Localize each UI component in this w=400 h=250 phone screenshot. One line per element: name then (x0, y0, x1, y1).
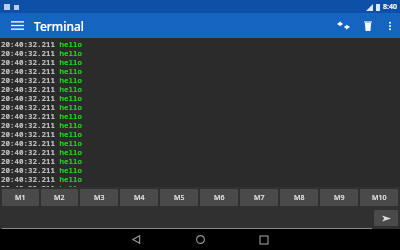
staticText: 20:40:32.211 hello (1, 129, 82, 138)
button[interactable] (0, 207, 374, 229)
button[interactable]: M8 (280, 189, 318, 206)
staticText: 20:40:32.211 hello (1, 48, 82, 57)
staticText: Terminal (34, 18, 85, 34)
staticText: 20:40:32.211 hello (1, 156, 82, 165)
button[interactable]: Connect (330, 13, 356, 38)
staticText: 20:40:32.211 hello (1, 93, 82, 102)
button[interactable]: Back (104, 229, 168, 250)
staticText: 20:40:32.211 hello (1, 165, 82, 174)
button[interactable]: M4 (120, 189, 158, 206)
staticText: 20:40:32.211 hello (1, 111, 82, 120)
staticText: 20:40:32.211 hello (1, 102, 82, 111)
button[interactable]: M3 (80, 189, 118, 206)
staticText: 20:40:32.211 hello (1, 120, 82, 129)
staticText: 20:40:32.211 hello (1, 39, 82, 48)
staticText: M7 (254, 193, 265, 203)
staticText: 20:40:32.211 hello (1, 183, 82, 187)
button[interactable]: Clear terminal (356, 13, 380, 38)
staticText: 8:40 (383, 2, 397, 12)
button[interactable]: M7 (240, 189, 278, 206)
staticText: M6 (214, 193, 225, 203)
staticText: 20:40:32.211 hello (1, 147, 82, 156)
staticText: M9 (334, 193, 345, 203)
button[interactable]: Recent apps (232, 229, 296, 250)
button[interactable]: M9 (320, 189, 358, 206)
button[interactable]: M2 (41, 189, 78, 206)
button[interactable]: M10 (360, 189, 398, 206)
button[interactable]: Open navigation drawer (0, 13, 34, 38)
button[interactable]: Send (374, 210, 398, 226)
staticText: M3 (94, 193, 105, 203)
button[interactable]: M5 (160, 189, 198, 206)
staticText: M1 (15, 193, 26, 203)
button[interactable]: More options (380, 13, 400, 38)
staticText: 20:40:32.211 hello (1, 84, 82, 93)
staticText: M8 (294, 193, 305, 203)
staticText: 20:40:32.211 hello (1, 75, 82, 84)
staticText: M4 (134, 193, 145, 203)
staticText: M10 (372, 193, 387, 203)
staticText: M5 (174, 193, 185, 203)
button[interactable]: Home (168, 229, 232, 250)
staticText: M2 (54, 193, 65, 203)
staticText: 20:40:32.211 hello (1, 138, 82, 147)
button[interactable]: M6 (200, 189, 238, 206)
staticText: 20:40:32.211 hello (1, 57, 82, 66)
staticText: 20:40:32.211 hello (1, 174, 82, 183)
staticText: 20:40:32.211 hello (1, 66, 82, 75)
button[interactable]: M1 (2, 189, 39, 206)
